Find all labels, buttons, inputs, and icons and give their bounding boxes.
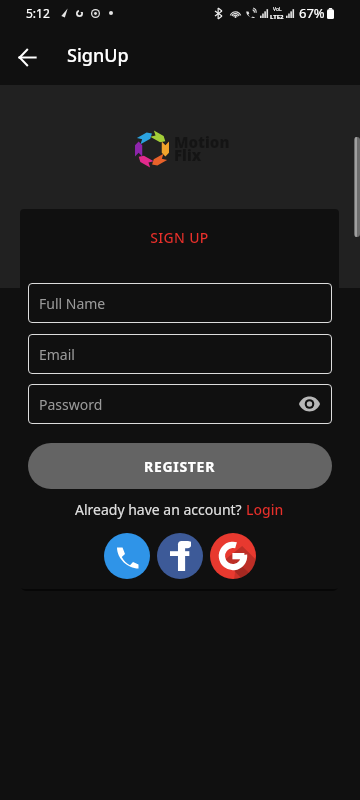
staticText: VoL [273, 6, 282, 13]
staticText: Full Name [39, 294, 106, 313]
staticText: Login [246, 500, 284, 519]
button[interactable]: Sign up with Google [210, 533, 256, 579]
staticText: Already have an account? [75, 500, 246, 519]
staticText: 67% [299, 4, 325, 22]
button[interactable]: Login [246, 500, 284, 519]
staticText: 5:12 [26, 5, 50, 21]
staticText: Password [39, 395, 103, 414]
button[interactable]: REGISTER [28, 443, 332, 489]
staticText: Email [39, 345, 75, 364]
staticText: SIGN UP [20, 228, 339, 247]
staticText: SignUp [67, 43, 129, 68]
button[interactable]: Sign up with Facebook [157, 533, 203, 579]
button[interactable]: Password [28, 384, 332, 424]
staticText: Flix [174, 145, 202, 165]
other: Show password [298, 396, 321, 412]
button[interactable]: Back [6, 35, 48, 77]
staticText: Motion [174, 132, 230, 152]
staticText: LTE2 [270, 13, 284, 21]
staticText: REGISTER [144, 457, 216, 476]
button[interactable]: Email [28, 334, 332, 374]
button[interactable]: Full Name [28, 283, 332, 323]
button[interactable]: Sign up with phone [104, 533, 150, 579]
